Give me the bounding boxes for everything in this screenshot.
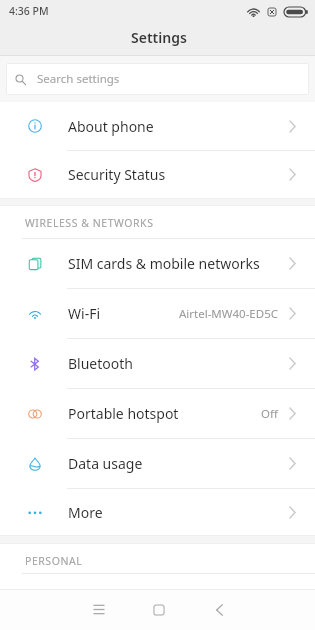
button[interactable]: Wi-Fi <box>0 289 315 338</box>
staticText: Settings <box>131 28 187 47</box>
button[interactable]: Data usage <box>0 439 315 488</box>
staticText: Airtel-MW40-ED5C <box>179 306 278 322</box>
staticText: About phone <box>68 117 154 136</box>
staticText: Data usage <box>68 454 143 473</box>
button[interactable]: Portable hotspot <box>0 389 315 438</box>
button[interactable]: About phone <box>0 102 315 150</box>
staticText: More <box>68 503 103 522</box>
button[interactable]: Menu <box>78 589 120 630</box>
staticText: Off <box>261 406 278 422</box>
button[interactable]: Back <box>198 589 240 630</box>
staticText: Wi-Fi <box>68 304 101 323</box>
staticText: Search settings <box>37 71 120 87</box>
staticText: Portable hotspot <box>68 404 179 423</box>
staticText: 4:36 PM <box>9 4 49 18</box>
staticText: Security Status <box>68 165 166 184</box>
button[interactable]: More <box>0 489 315 535</box>
button[interactable]: Bluetooth <box>0 339 315 388</box>
button[interactable]: Home <box>138 589 180 630</box>
staticText: WIRELESS & NETWORKS <box>25 216 154 230</box>
staticText: SIM cards & mobile networks <box>68 254 260 273</box>
button[interactable]: Security Status <box>0 151 315 198</box>
staticText: PERSONAL <box>25 554 83 568</box>
button[interactable]: SIM cards & mobile networks <box>0 239 315 288</box>
staticText: Bluetooth <box>68 354 133 373</box>
button[interactable]: Search settings <box>6 63 309 95</box>
